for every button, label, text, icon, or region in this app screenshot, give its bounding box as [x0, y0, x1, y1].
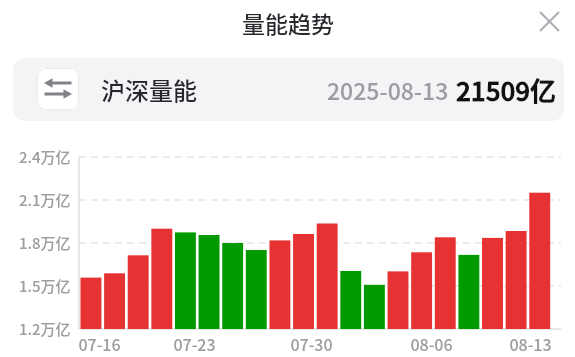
- staticText: 1.2万亿: [19, 318, 71, 338]
- staticText: 08-13: [509, 332, 552, 352]
- staticText: 1.5万亿: [19, 275, 71, 295]
- staticText: 07-16: [78, 332, 121, 352]
- staticText: 1.8万亿: [19, 232, 71, 252]
- staticText: 07-23: [173, 332, 216, 352]
- staticText: 2.1万亿: [19, 189, 71, 209]
- staticText: 08-06: [410, 332, 453, 352]
- staticText: 2025-08-13: [327, 73, 449, 106]
- staticText: 07-30: [290, 332, 333, 352]
- staticText: 2.4万亿: [19, 146, 71, 166]
- staticText: 沪深量能: [101, 72, 197, 107]
- staticText: 量能趋势: [242, 6, 334, 36]
- staticText: 21509亿: [456, 71, 557, 109]
